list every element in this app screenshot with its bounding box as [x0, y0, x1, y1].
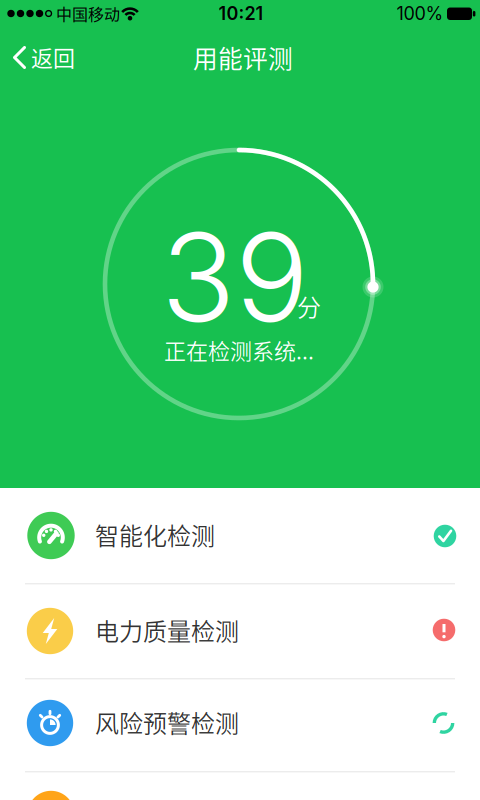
- staticText: 智能化检测: [95, 517, 215, 552]
- staticText: 39: [161, 203, 309, 351]
- staticText: 100%: [396, 3, 443, 24]
- staticText: 风险预警检测: [95, 705, 239, 739]
- staticText: 正在检测系统...: [164, 334, 314, 366]
- staticText: 电力质量检测: [95, 613, 239, 647]
- staticText: 用能评测: [193, 40, 293, 75]
- staticText: 10:21: [218, 3, 263, 24]
- staticText: 中国移动: [56, 2, 120, 25]
- staticText: 分: [297, 289, 321, 323]
- staticText: 返回: [31, 41, 75, 73]
